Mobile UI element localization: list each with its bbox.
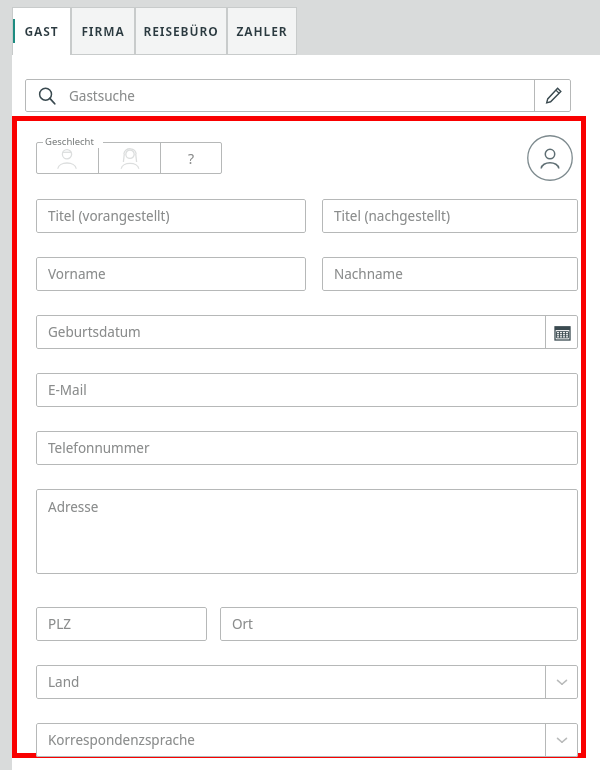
button[interactable]: ZAHLER [227, 7, 297, 55]
staticText: Vorname [48, 265, 106, 283]
staticText: Titel (nachgestellt) [334, 207, 451, 225]
staticText: ? [188, 149, 195, 168]
button[interactable]: Nachname [322, 257, 578, 291]
button[interactable]: Telefonnummer [36, 431, 578, 465]
button[interactable]: Bearbeiten [535, 79, 571, 112]
button[interactable]: Land auswählen [546, 665, 578, 699]
button[interactable]: Titel (nachgestellt) [322, 199, 578, 233]
staticText: Geburtsdatum [48, 323, 141, 341]
button[interactable]: Ort [220, 607, 578, 641]
button[interactable]: Profilbild [527, 135, 573, 181]
button[interactable]: Land [36, 665, 545, 699]
button[interactable]: REISEBÜRO [135, 7, 227, 55]
button[interactable]: PLZ [36, 607, 207, 641]
staticText: E-Mail [48, 381, 87, 399]
button[interactable]: GAST [12, 7, 71, 55]
button[interactable]: Sprache auswählen [546, 723, 578, 757]
button[interactable]: E-Mail [36, 373, 578, 407]
staticText: Titel (vorangestellt) [48, 207, 170, 225]
button[interactable]: Suchen [25, 79, 69, 112]
staticText: Nachname [334, 265, 403, 283]
button[interactable]: Männlich [36, 142, 98, 174]
button[interactable]: FIRMA [71, 7, 135, 55]
button[interactable]: Korrespondenzsprache [36, 723, 545, 757]
staticText: Geschlecht [45, 135, 94, 148]
button[interactable]: Adresse [36, 489, 578, 574]
staticText: Korrespondenzsprache [48, 731, 195, 749]
staticText: ZAHLER [236, 23, 288, 39]
staticText: REISEBÜRO [143, 23, 219, 39]
staticText: Telefonnummer [48, 439, 150, 457]
staticText: Gastsuche [69, 87, 135, 105]
staticText: Adresse [48, 498, 99, 516]
button[interactable]: Kalender öffnen [546, 315, 578, 349]
button[interactable]: Titel (vorangestellt) [36, 199, 306, 233]
staticText: Ort [232, 615, 253, 633]
button[interactable]: Weiblich [99, 142, 160, 174]
button[interactable]: Unbekannt [161, 142, 222, 174]
staticText: GAST [24, 23, 59, 39]
button[interactable]: Geburtsdatum [36, 315, 545, 349]
button[interactable]: Vorname [36, 257, 306, 291]
staticText: FIRMA [81, 23, 125, 39]
staticText: Land [48, 673, 80, 691]
staticText: PLZ [48, 615, 71, 633]
